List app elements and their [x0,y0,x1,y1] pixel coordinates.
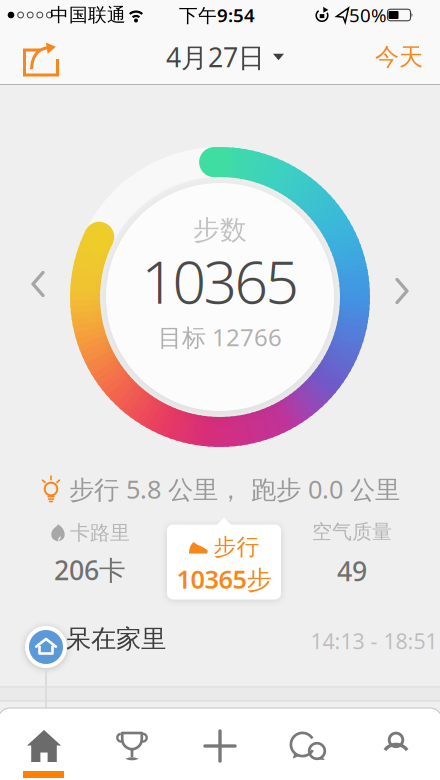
staticText: 206卡 [54,552,126,587]
staticText: 卡路里 [70,520,130,545]
staticText: 10365 [141,242,298,320]
staticText: 49 [337,553,367,588]
staticText: 呆在家里 [66,623,166,654]
button[interactable] [397,279,407,302]
button[interactable] [264,714,352,778]
staticText: 4月27日 [166,39,265,75]
staticText: 步行 5.8 公里， 跑步 0.0 公里 [69,472,400,506]
button[interactable] [0,714,88,778]
staticText: 今天 [375,42,423,72]
button[interactable]: 今天 [375,42,423,72]
button[interactable]: 4月27日 [166,39,284,75]
staticText: 下午9:54 [179,3,255,27]
staticText: 步数 [193,214,247,246]
staticText: 目标 12766 [158,321,282,353]
button[interactable] [19,42,63,78]
staticText: 步行 [213,533,259,561]
button[interactable]: 呆在家里 [0,610,440,687]
staticText: 空气质量 [312,519,392,544]
staticText: 14:13 - 18:51 [310,627,437,655]
button[interactable]: 步行 [167,524,281,599]
staticText: 50% [349,3,387,27]
staticText: 中国联通 [50,3,126,26]
button[interactable] [33,272,43,295]
button[interactable] [88,714,176,778]
button[interactable] [352,714,440,778]
staticText: 10365步 [176,562,271,596]
button[interactable] [176,714,264,778]
